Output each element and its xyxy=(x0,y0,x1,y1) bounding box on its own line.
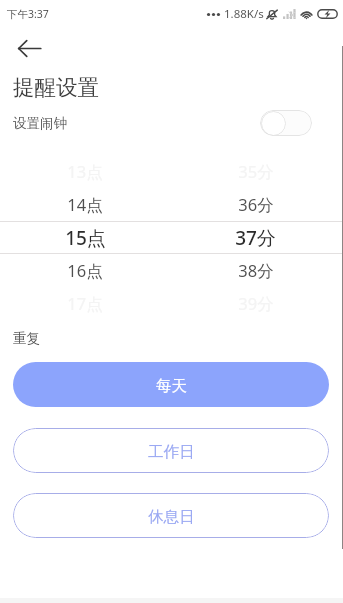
button[interactable]: 36分 xyxy=(170,188,341,221)
staticText: 下午3:37 xyxy=(7,7,49,21)
staticText: 工作日 xyxy=(148,442,195,462)
staticText: 37分 xyxy=(235,225,276,251)
staticText: 16点 xyxy=(67,259,103,282)
button[interactable]: Toggle alarm xyxy=(260,110,312,136)
staticText: 38分 xyxy=(238,259,274,282)
staticText: 休息日 xyxy=(148,507,195,527)
staticText: 36分 xyxy=(238,193,274,216)
button[interactable]: 14点 xyxy=(0,188,170,221)
button[interactable]: 38分 xyxy=(170,254,341,287)
button[interactable]: 休息日 xyxy=(13,493,329,538)
button[interactable]: Back xyxy=(7,31,51,65)
staticText: 每天 xyxy=(156,376,187,396)
staticText: 重复 xyxy=(13,330,40,347)
button[interactable]: 每天 xyxy=(13,362,329,407)
staticText: 14点 xyxy=(67,193,103,216)
button[interactable]: 16点 xyxy=(0,254,170,287)
button[interactable]: 37分 xyxy=(170,221,341,254)
staticText: 15点 xyxy=(65,225,106,251)
staticText: 设置闹钟 xyxy=(13,115,67,132)
staticText: 提醒设置 xyxy=(13,74,99,101)
button[interactable]: 工作日 xyxy=(13,428,329,473)
staticText: 35分 xyxy=(238,160,274,183)
staticText: 1.88K/s xyxy=(224,6,264,22)
staticText: 13点 xyxy=(67,160,103,183)
staticText: 39分 xyxy=(238,292,274,315)
staticText: 17点 xyxy=(67,292,103,315)
button[interactable]: 15点 xyxy=(0,221,170,254)
